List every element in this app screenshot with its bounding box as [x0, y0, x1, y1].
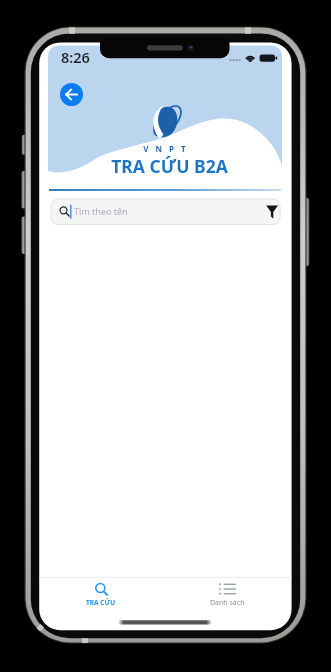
- staticText: 8:26: [61, 47, 90, 67]
- button[interactable]: Tìm theo tên: [51, 199, 280, 225]
- staticText: Tìm theo tên: [74, 205, 128, 217]
- staticText: TRA CỨU: [86, 598, 116, 607]
- staticText: TRA CỨU B2A: [111, 154, 228, 178]
- staticText: Danh sách: [210, 598, 245, 608]
- button[interactable]: TRA CỨU: [77, 580, 125, 607]
- button[interactable]: [60, 83, 83, 106]
- button[interactable]: [262, 200, 284, 222]
- button[interactable]: Danh sách: [203, 580, 252, 608]
- staticText: VNPT: [143, 143, 193, 154]
